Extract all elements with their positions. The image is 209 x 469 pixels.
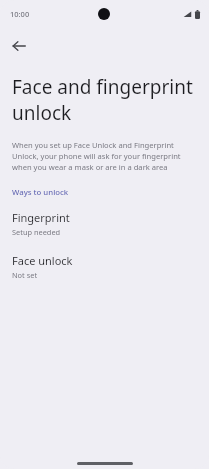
staticText: When you set up Face Unlock and Fingerpr… (12, 140, 198, 172)
staticText: Face unlock (12, 253, 73, 268)
staticText: 10:00 (10, 9, 30, 19)
staticText: Setup needed (12, 227, 61, 237)
button[interactable]: Back (5, 32, 33, 60)
staticText: Ways to unlock (12, 187, 69, 198)
button[interactable]: Face unlock (0, 251, 209, 282)
staticText: Face and fingerprint unlock (12, 74, 195, 125)
button[interactable]: Fingerprint (0, 208, 209, 239)
staticText: Not set (12, 270, 38, 280)
staticText: Fingerprint (12, 210, 70, 225)
